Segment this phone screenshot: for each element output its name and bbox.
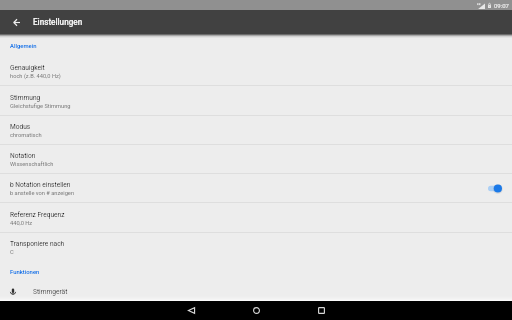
- staticText: Stimmung: [10, 94, 41, 102]
- staticText: Referenz Frequenz: [10, 211, 65, 219]
- staticText: Genauigkeit: [10, 64, 45, 72]
- staticText: Allgemein: [10, 43, 37, 50]
- button[interactable]: Transponiere nach: [0, 233, 512, 262]
- button[interactable]: Recent apps: [306, 301, 336, 320]
- staticText: Modus: [10, 123, 31, 131]
- staticText: hoch (z.B. 440,0 Hz): [10, 73, 61, 80]
- staticText: Funktionen: [10, 269, 40, 276]
- staticText: Stimmgerät: [33, 288, 68, 296]
- button[interactable]: Notation: [0, 145, 512, 174]
- staticText: Wissenschaftlich: [10, 161, 54, 168]
- staticText: 09:07: [494, 2, 509, 9]
- staticText: chromatisch: [10, 132, 42, 139]
- staticText: Einstellungen: [33, 17, 83, 27]
- button[interactable]: b Notation einstellen: [0, 174, 512, 203]
- button[interactable]: Stimmgerät: [0, 283, 512, 299]
- button[interactable]: Referenz Frequenz: [0, 204, 512, 233]
- button[interactable]: Stimmung: [0, 87, 512, 116]
- button[interactable]: Home: [241, 301, 271, 320]
- staticText: Notation: [10, 152, 36, 160]
- staticText: 440,0 Hz: [10, 220, 33, 227]
- button[interactable]: Genauigkeit: [0, 57, 512, 86]
- staticText: Transponiere nach: [10, 240, 65, 248]
- staticText: b Notation einstellen: [10, 181, 71, 189]
- staticText: Gleichstufige Stimmung: [10, 103, 71, 110]
- button[interactable]: Back: [176, 301, 206, 320]
- button[interactable]: Modus: [0, 116, 512, 145]
- staticText: b anstelle von # anzeigen: [10, 190, 75, 197]
- staticText: C: [10, 249, 14, 256]
- button[interactable]: Navigate up: [8, 10, 25, 34]
